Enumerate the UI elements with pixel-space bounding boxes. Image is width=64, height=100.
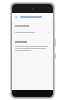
button[interactable]: Power button <box>55 38 56 47</box>
button[interactable]: Expand options <box>47 31 50 34</box>
button[interactable]: Volume button <box>55 53 56 59</box>
button[interactable]: Navigate up <box>14 15 18 19</box>
button[interactable]: Expand options <box>15 30 50 34</box>
button[interactable]: Navigate up <box>12 13 53 21</box>
